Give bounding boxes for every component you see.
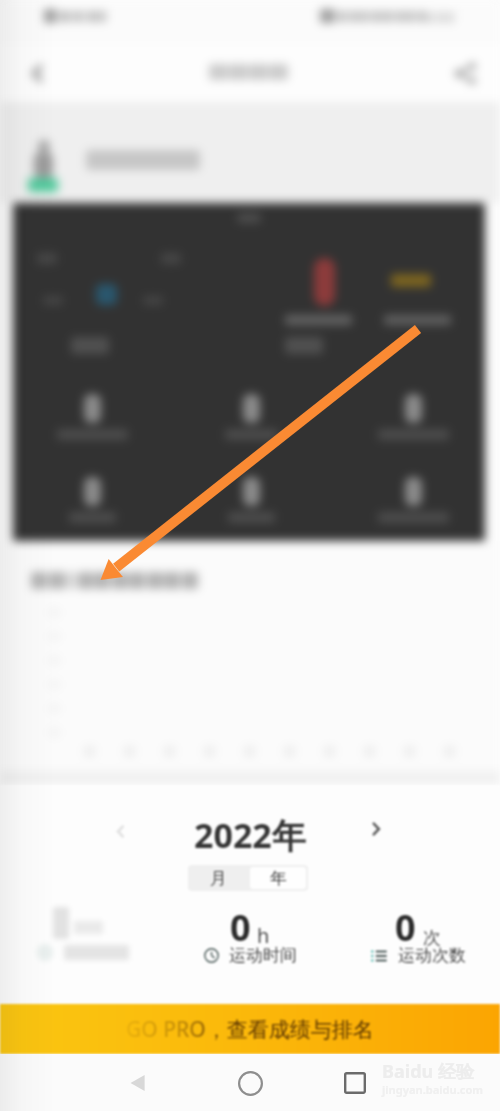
button[interactable]: Back xyxy=(116,1061,160,1105)
staticText: jingyan.baidu.com xyxy=(382,1082,484,1097)
button[interactable]: Previous year xyxy=(107,818,133,844)
staticText: h xyxy=(257,922,270,949)
staticText: Baidu 经验 xyxy=(382,1059,474,1084)
button[interactable]: GO PRO，查看成绩与排名 xyxy=(0,1004,500,1054)
button[interactable] xyxy=(40,394,144,452)
button[interactable] xyxy=(40,477,144,535)
staticText: 运动次数 xyxy=(398,945,466,966)
staticText: 0 xyxy=(230,903,251,952)
staticText: 2022年 xyxy=(194,812,306,858)
button[interactable] xyxy=(199,477,303,535)
button[interactable]: Home xyxy=(228,1061,272,1105)
button[interactable] xyxy=(199,394,303,452)
button[interactable] xyxy=(361,394,465,452)
button[interactable]: Next year xyxy=(362,815,390,843)
button[interactable]: 月 xyxy=(188,865,248,891)
staticText: 运动时间 xyxy=(229,945,297,966)
staticText: 次 xyxy=(423,927,441,950)
staticText: 月 xyxy=(210,868,227,889)
staticText: 年 xyxy=(270,868,287,889)
button[interactable]: 年 xyxy=(250,867,306,889)
button[interactable]: Recents xyxy=(333,1061,377,1105)
staticText: 0 xyxy=(395,903,416,952)
button[interactable] xyxy=(361,477,465,535)
button[interactable]: Share xyxy=(442,50,488,96)
staticText: GO PRO，查看成绩与排名 xyxy=(126,1015,374,1044)
button[interactable]: Back xyxy=(14,50,60,96)
